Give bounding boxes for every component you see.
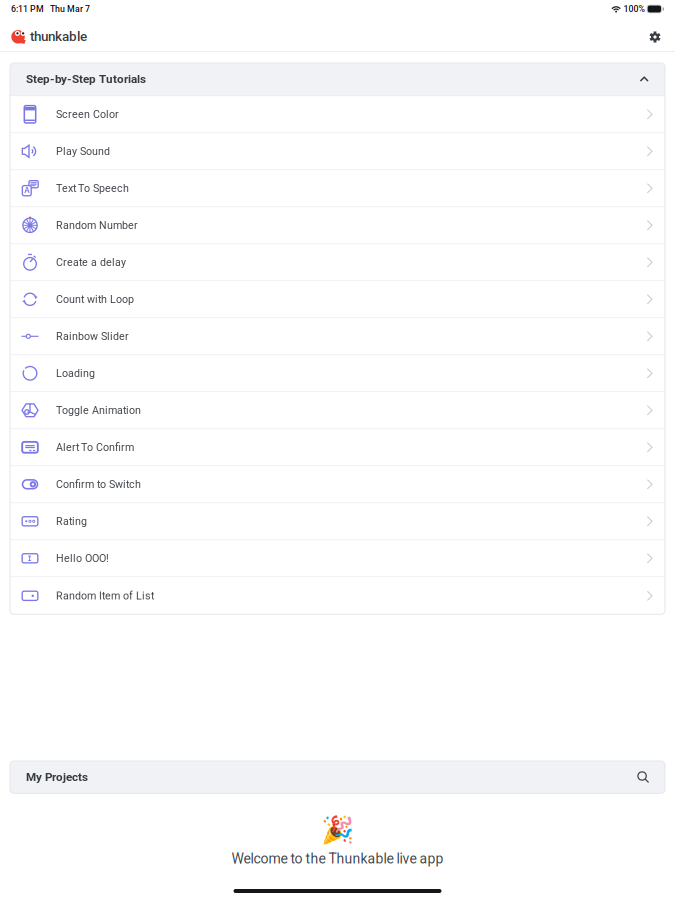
staticText: My Projects [26,770,88,784]
staticText: Rainbow Slider [56,330,129,342]
staticText: Welcome to the Thunkable live app [231,851,443,867]
button[interactable]: Create a delay [10,244,665,281]
button[interactable]: Alert To Confirm [10,429,665,466]
staticText: Toggle Animation [56,404,141,416]
button[interactable]: My Projects [10,761,665,793]
staticText: Count with Loop [56,293,134,305]
button[interactable]: Toggle Animation [10,392,665,429]
button[interactable]: Confirm to Switch [10,466,665,503]
staticText: A [24,186,29,195]
staticText: thunkable [30,29,87,44]
staticText: 100% [622,4,647,14]
button[interactable]: Step-by-Step Tutorials [10,63,665,95]
button[interactable]: Settings [642,19,675,50]
button[interactable]: Rainbow Slider [10,318,665,355]
staticText: Random Number [56,219,138,231]
staticText: Thu Mar 7 [44,4,90,14]
staticText: Rating [56,515,87,527]
button[interactable]: Random Number [10,207,665,244]
button[interactable]: Play Sound [10,133,665,170]
button[interactable]: Count with Loop [10,281,665,318]
button[interactable]: Loading [10,355,665,392]
staticText: Hello OOO! [56,552,109,564]
staticText: Random Item of List [56,589,154,602]
staticText: Step-by-Step Tutorials [26,72,146,86]
staticText: Alert To Confirm [56,441,134,453]
button[interactable]: thunkable [0,22,87,47]
button[interactable]: Rating [10,503,665,540]
staticText: Confirm to Switch [56,478,141,490]
button[interactable]: A [10,170,665,207]
staticText: Screen Color [56,108,119,120]
button[interactable]: Random Item of List [10,577,665,614]
staticText: Play Sound [56,145,110,157]
staticText: Text To Speech [56,182,129,194]
button[interactable]: Screen Color [10,96,665,133]
staticText: Loading [56,367,95,379]
staticText: 6:11 PM [11,4,44,14]
staticText: Create a delay [56,256,126,268]
staticText: 🎉 [321,815,354,846]
button[interactable]: Hello OOO! [10,540,665,577]
